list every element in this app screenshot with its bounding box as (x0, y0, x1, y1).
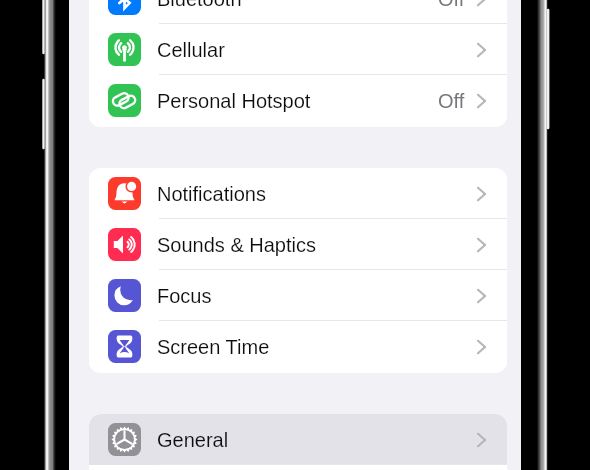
staticText: Sounds & Haptics (157, 234, 316, 256)
button[interactable]: General (89, 414, 507, 465)
staticText: Bluetooth (157, 0, 242, 10)
button[interactable]: Screen Time (89, 321, 507, 372)
staticText: Screen Time (157, 336, 270, 358)
button[interactable]: Bluetooth (89, 0, 507, 24)
staticText: General (157, 429, 229, 451)
staticText: Notifications (157, 183, 266, 205)
button[interactable]: Notifications (89, 168, 507, 219)
staticText: Personal Hotspot (157, 90, 311, 112)
button[interactable]: Cellular (89, 24, 507, 75)
button[interactable]: Sounds & Haptics (89, 219, 507, 270)
staticText: Off (438, 0, 465, 10)
staticText: Cellular (157, 39, 225, 61)
staticText: Focus (157, 285, 212, 307)
button[interactable]: Personal Hotspot (89, 75, 507, 126)
staticText: Off (438, 90, 465, 112)
button[interactable]: Focus (89, 270, 507, 321)
